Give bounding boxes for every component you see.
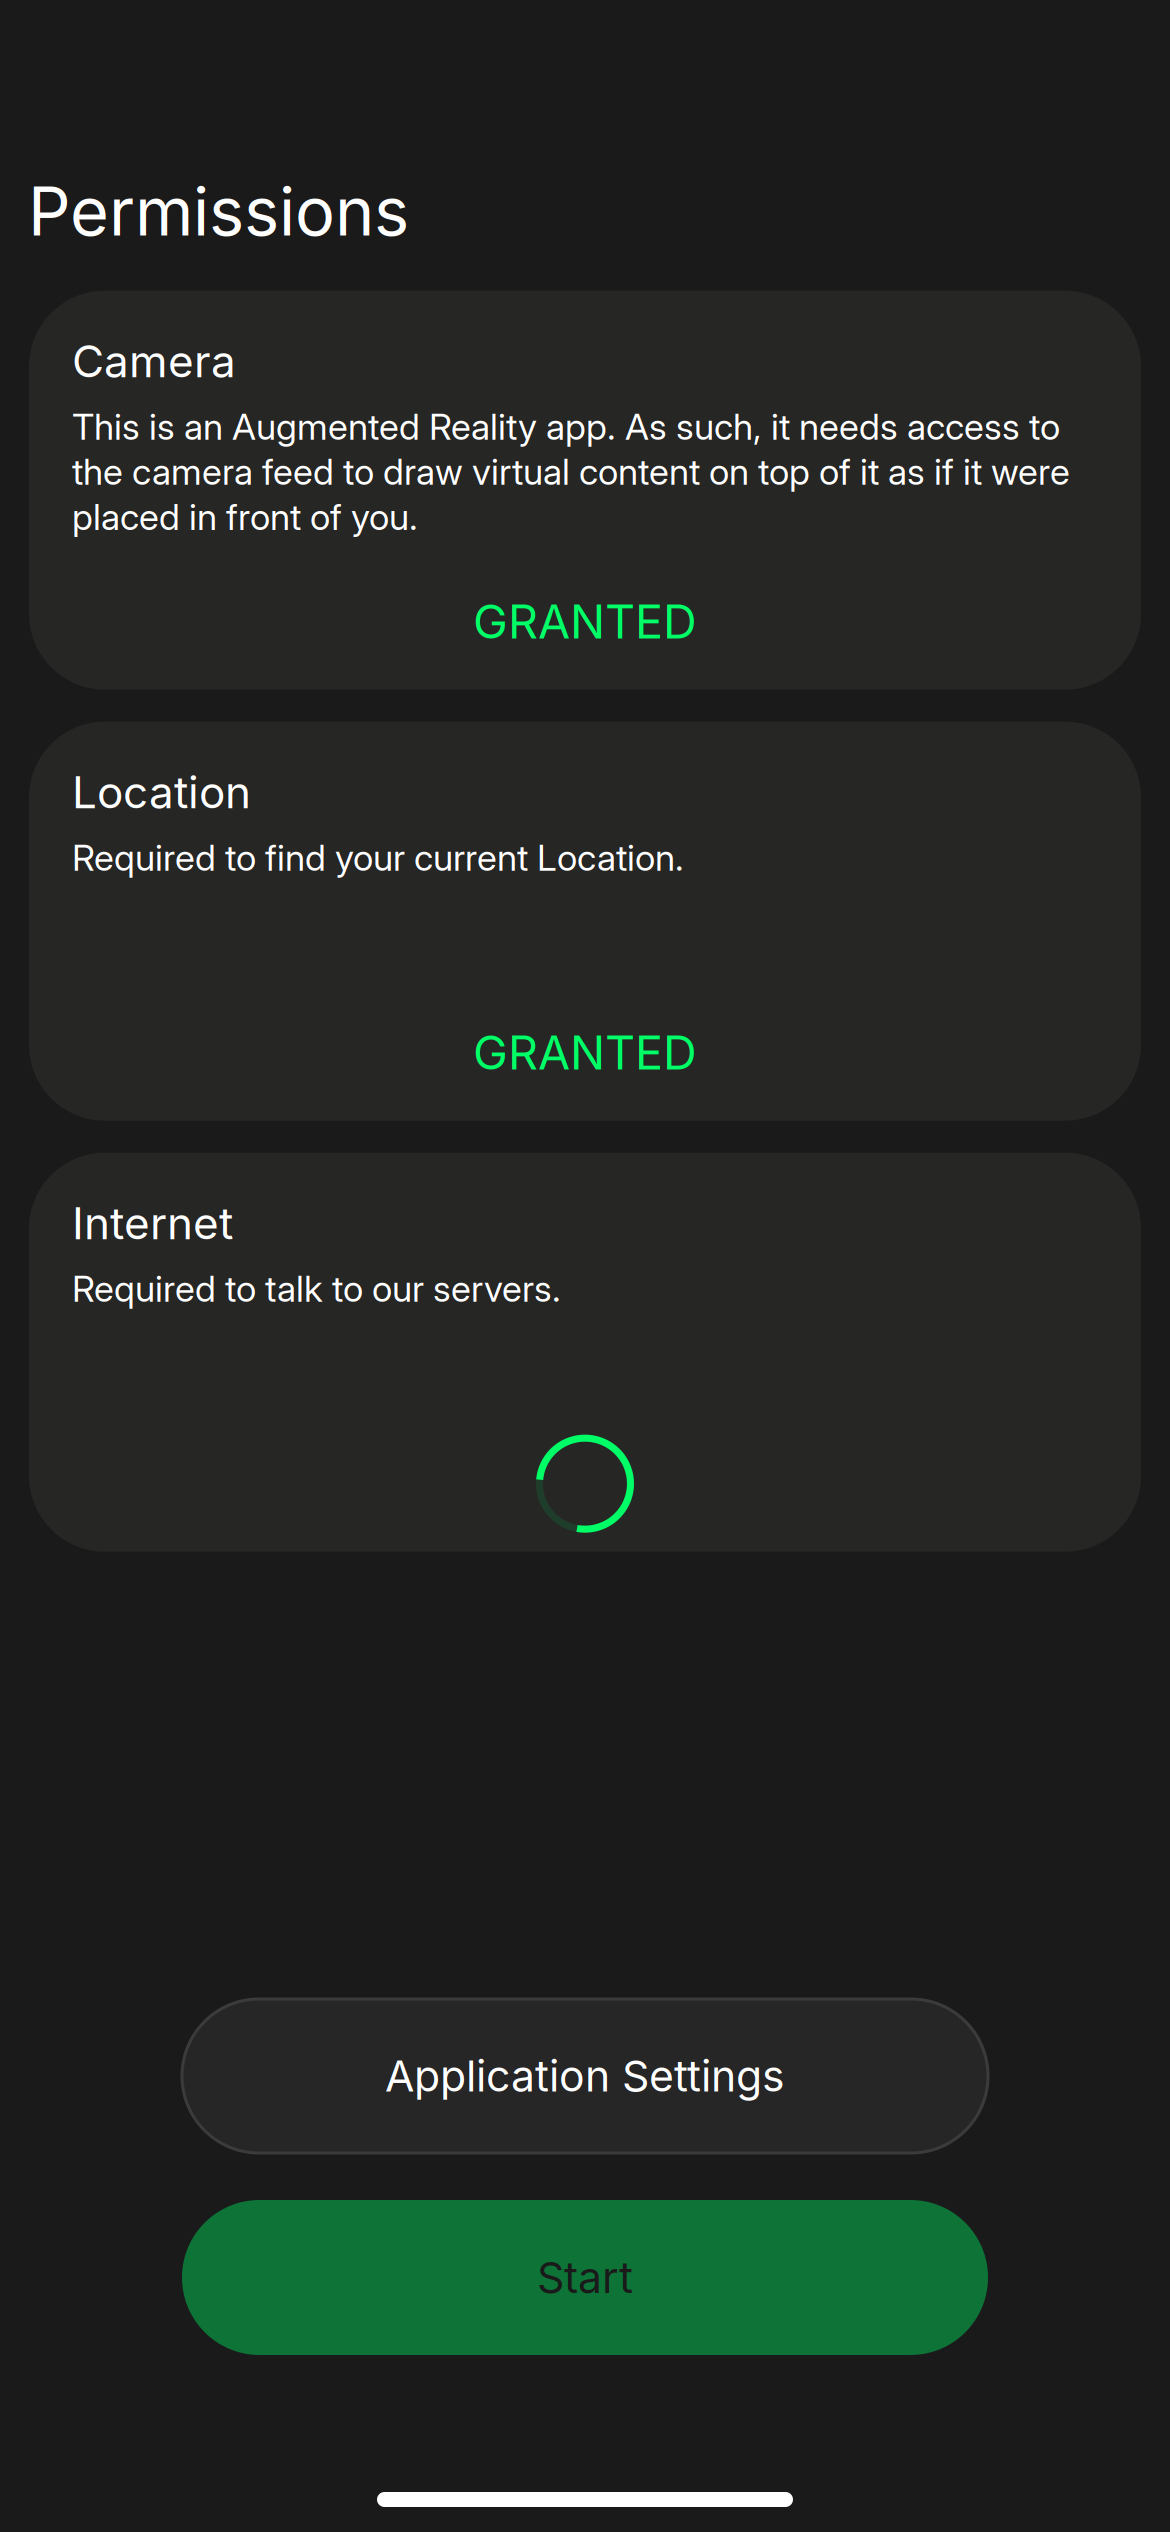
staticText: Required to find your current Location. [72,836,684,879]
staticText: Internet [72,1197,233,1250]
staticText: Camera [72,335,236,388]
staticText: Required to talk to our servers. [72,1267,561,1310]
staticText: GRANTED [473,593,697,650]
staticText: Permissions [28,171,409,252]
staticText: Location [72,766,251,819]
staticText: Application Settings [385,2050,785,2102]
button[interactable]: Start [182,2200,988,2355]
staticText: GRANTED [473,1024,697,1081]
staticText: Start [537,2252,633,2303]
button[interactable]: Application Settings [182,1999,988,2153]
staticText: This is an Augmented Reality app. As suc… [72,405,1070,539]
